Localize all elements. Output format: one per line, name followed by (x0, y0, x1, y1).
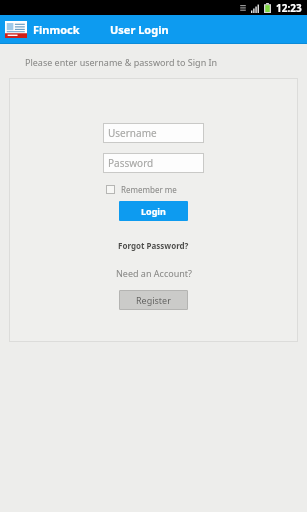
staticText: Username (108, 126, 157, 140)
button[interactable]: Password (103, 153, 204, 173)
staticText: Finmock (33, 22, 80, 37)
button[interactable]: Login (119, 201, 188, 221)
button[interactable]: Forgot Password? (114, 238, 193, 253)
staticText: Please enter username & password to Sign… (25, 56, 218, 68)
staticText: Register (136, 294, 171, 306)
staticText: Remember me (121, 184, 177, 195)
button[interactable]: Username (103, 123, 204, 143)
staticText: User Login (110, 22, 169, 37)
staticText: Login (141, 205, 166, 217)
staticText: Forgot Password? (118, 240, 189, 251)
staticText: Need an Account? (116, 267, 192, 279)
staticText: 12:23 (276, 1, 302, 15)
button[interactable]: Register (119, 290, 188, 310)
staticText: Password (108, 156, 154, 170)
button[interactable]: Finmock home (5, 21, 27, 38)
button[interactable]: Remember me (103, 184, 204, 195)
